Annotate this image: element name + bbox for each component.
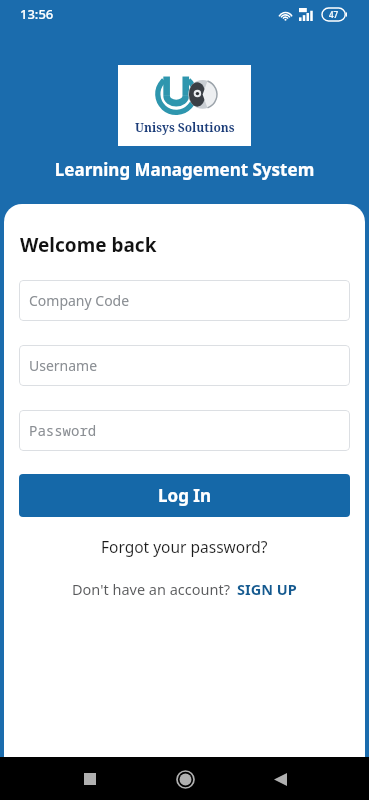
button[interactable]: Password <box>19 410 350 451</box>
button[interactable]: Username <box>19 345 350 386</box>
staticText: Company Code <box>29 291 130 310</box>
staticText: Username <box>29 356 98 375</box>
staticText: Log In <box>158 484 211 507</box>
staticText: Forgot your password? <box>101 536 268 557</box>
button[interactable]: Home <box>168 762 202 796</box>
staticText: Password <box>29 421 97 440</box>
staticText: Learning Management System <box>12 158 357 181</box>
other: Mobile signal 4G+ <box>299 8 316 21</box>
other: Wi-Fi <box>278 9 293 21</box>
button[interactable]: Back <box>263 762 297 796</box>
button[interactable]: Recent apps <box>73 762 107 796</box>
other: Battery 47 percent <box>322 8 347 21</box>
button[interactable]: SIGN UP <box>237 579 297 599</box>
button[interactable]: Company Code <box>19 280 350 321</box>
button[interactable]: Log In <box>19 474 350 517</box>
staticText: 47 <box>329 9 339 20</box>
staticText: 13:56 <box>20 5 54 23</box>
staticText: Don't have an account? <box>72 579 230 599</box>
staticText: Welcome back <box>20 232 157 258</box>
button[interactable]: Forgot your password? <box>4 531 365 562</box>
staticText: Unisys Solutions <box>135 119 235 135</box>
staticText: SIGN UP <box>237 579 297 599</box>
